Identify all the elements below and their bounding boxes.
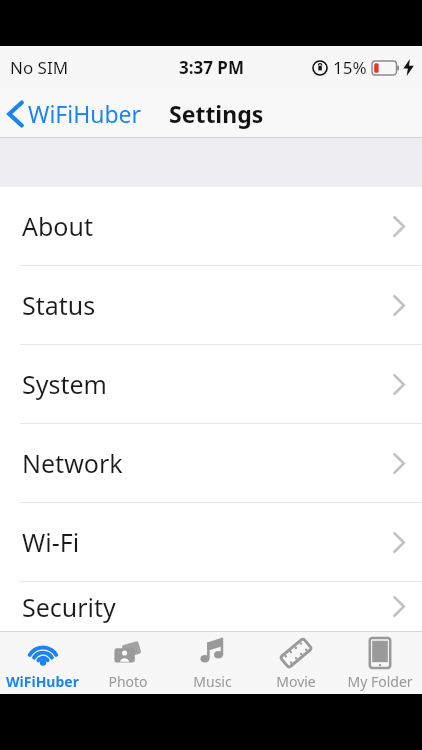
staticText: WiFiHuber (28, 98, 142, 129)
staticText: 15% (333, 56, 367, 79)
button[interactable]: Photo (85, 632, 170, 694)
staticText: No SIM (10, 56, 69, 79)
staticText: Network (22, 446, 123, 480)
button[interactable]: Security (0, 582, 422, 631)
button[interactable]: Status (0, 266, 422, 344)
staticText: Security (22, 590, 116, 624)
staticText: About (22, 209, 93, 243)
staticText: System (22, 367, 107, 401)
staticText: Wi-Fi (22, 525, 80, 559)
button[interactable]: System (0, 345, 422, 423)
staticText: Music (193, 672, 232, 691)
staticText: WiFiHuber (6, 672, 79, 691)
staticText: 3:37 PM (179, 56, 244, 79)
staticText: Movie (276, 672, 316, 691)
button[interactable]: About (0, 187, 422, 265)
button[interactable]: Music (170, 632, 254, 694)
staticText: Status (22, 288, 96, 322)
staticText: My Folder (347, 672, 413, 691)
staticText: Settings (169, 98, 264, 129)
button[interactable]: Network (0, 424, 422, 502)
button[interactable]: WiFiHuber (0, 92, 152, 135)
staticText: Photo (108, 672, 148, 691)
button[interactable]: WiFiHuber (0, 632, 85, 694)
button[interactable]: My Folder (338, 632, 422, 694)
button[interactable]: Movie (254, 632, 338, 694)
button[interactable]: Wi-Fi (0, 503, 422, 581)
